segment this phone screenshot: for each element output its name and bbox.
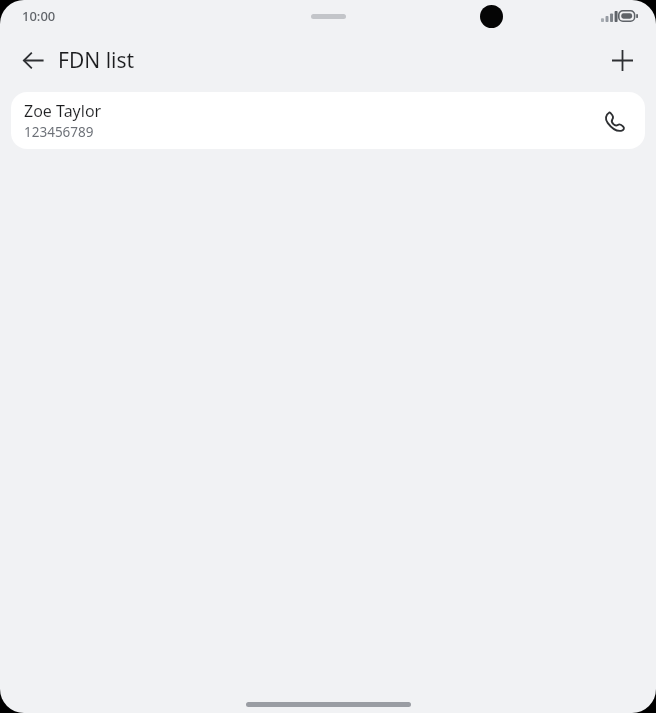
staticText: 10:00 bbox=[22, 7, 56, 25]
button[interactable]: Call Zoe Taylor bbox=[594, 101, 634, 141]
staticText: 123456789 bbox=[24, 123, 94, 141]
button[interactable]: Back bbox=[9, 36, 57, 84]
button[interactable]: Add contact bbox=[598, 36, 646, 84]
staticText: FDN list bbox=[58, 46, 135, 75]
button[interactable]: Zoe Taylor bbox=[11, 92, 645, 149]
staticText: Zoe Taylor bbox=[24, 100, 102, 122]
